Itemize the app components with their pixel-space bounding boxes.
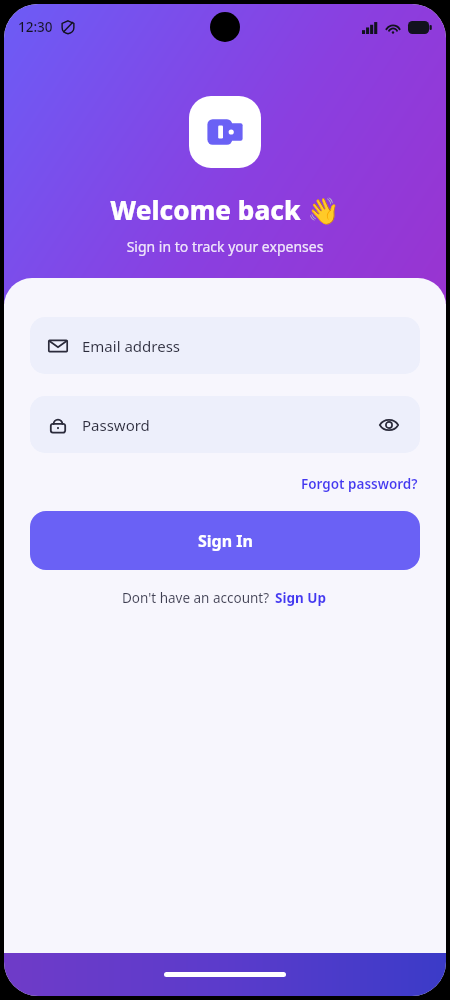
staticText: Password (82, 415, 150, 435)
staticText: Sign in to track your expenses (4, 237, 446, 256)
staticText: Sign In (198, 530, 253, 552)
staticText: 12:30 (18, 18, 53, 36)
staticText: Don't have an account? (122, 589, 273, 607)
button[interactable]: Email address (30, 317, 420, 374)
button[interactable]: Sign Up (273, 586, 329, 610)
staticText: Forgot password? (301, 475, 418, 493)
staticText: Welcome back 👋 (4, 192, 446, 227)
button[interactable]: Forgot password? (299, 471, 420, 497)
staticText: Email address (82, 336, 181, 356)
button[interactable]: Show password (376, 412, 402, 438)
staticText: Sign Up (275, 589, 327, 607)
button[interactable]: Sign In (30, 511, 420, 570)
button[interactable]: Password (30, 396, 420, 453)
